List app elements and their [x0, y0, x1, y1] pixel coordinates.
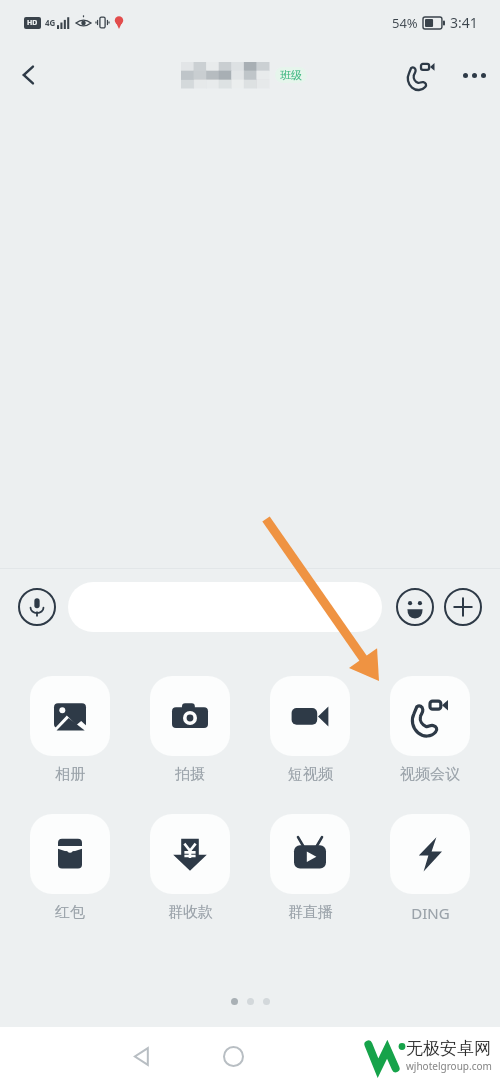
button[interactable]: 群直播: [260, 814, 360, 922]
staticText: 群收款: [168, 903, 213, 922]
staticText: 3:41: [450, 13, 478, 32]
staticText: 群直播: [288, 903, 333, 922]
staticText: 红包: [55, 903, 85, 922]
staticText: 视频会议: [400, 765, 460, 784]
button[interactable]: More functions: [440, 584, 486, 630]
button[interactable]: Video call: [394, 48, 448, 102]
staticText: wjhotelgroup.com: [406, 1059, 492, 1073]
staticText: 相册: [55, 765, 85, 784]
button[interactable]: Back: [0, 46, 58, 104]
staticText: 短视频: [288, 765, 333, 784]
button[interactable]: Back: [116, 1030, 168, 1082]
button[interactable]: 红包: [20, 814, 120, 922]
button[interactable]: Emoji: [392, 584, 438, 630]
button[interactable]: [68, 582, 382, 632]
button[interactable]: 拍摄: [140, 676, 240, 784]
button[interactable]: More options: [448, 49, 500, 101]
button[interactable]: 相册: [20, 676, 120, 784]
staticText: 54%: [392, 14, 418, 32]
staticText: DING: [411, 903, 450, 923]
button[interactable]: 短视频: [260, 676, 360, 784]
staticText: 班级: [280, 68, 302, 82]
button[interactable]: DING: [380, 814, 480, 923]
staticText: 拍摄: [175, 765, 205, 784]
button[interactable]: 视频会议: [380, 676, 480, 784]
staticText: HD: [27, 18, 38, 28]
button[interactable]: Home: [207, 1030, 259, 1082]
staticText: 4G: [45, 17, 56, 28]
button[interactable]: Voice input: [14, 584, 60, 630]
staticText: 无极安卓网: [406, 1038, 491, 1059]
button[interactable]: 群收款: [140, 814, 240, 922]
